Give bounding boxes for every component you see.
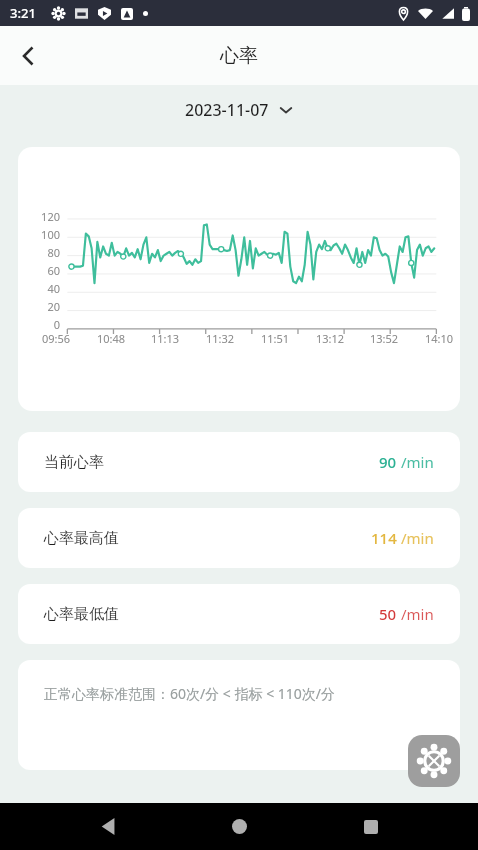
staticText: 20 <box>26 299 60 314</box>
staticText: 11:51 <box>261 331 290 346</box>
staticText: 90 <box>379 452 397 472</box>
staticText: 10:48 <box>97 331 126 346</box>
staticText: 心率最低值 <box>44 605 119 624</box>
staticText: 60 <box>26 263 60 278</box>
staticText: 09:56 <box>42 331 71 346</box>
staticText: 100 <box>26 227 60 242</box>
staticText: 80 <box>26 245 60 260</box>
staticText: /min <box>401 528 434 548</box>
button[interactable]: Settings <box>408 735 460 787</box>
staticText: 40 <box>26 281 60 296</box>
button[interactable]: Back <box>0 28 56 84</box>
staticText: 正常心率标准范围：60次/分 < 指标 < 110次/分 <box>44 684 336 703</box>
staticText: 11:32 <box>206 331 235 346</box>
button[interactable]: 当前心率 <box>18 432 460 492</box>
staticText: /min <box>401 604 434 624</box>
staticText: /min <box>401 452 434 472</box>
button[interactable]: Back <box>84 803 132 850</box>
button[interactable]: 心率最低值 <box>18 584 460 644</box>
staticText: 13:12 <box>316 331 345 346</box>
staticText: 50 <box>379 604 397 624</box>
staticText: 0 <box>26 317 60 332</box>
staticText: 3:21 <box>10 4 36 22</box>
button[interactable]: Recent apps <box>347 803 395 850</box>
button[interactable]: 2023-11-07 <box>177 93 301 127</box>
staticText: 2023-11-07 <box>185 99 269 121</box>
button[interactable]: Home <box>215 803 263 850</box>
staticText: 114 <box>371 528 397 548</box>
staticText: 120 <box>26 209 60 224</box>
staticText: 11:13 <box>151 331 180 346</box>
staticText: 当前心率 <box>44 453 104 472</box>
button[interactable]: 心率最高值 <box>18 508 460 568</box>
staticText: 13:52 <box>370 331 399 346</box>
staticText: 心率最高值 <box>44 529 119 548</box>
staticText: 心率 <box>220 44 258 68</box>
staticText: 14:10 <box>425 331 454 346</box>
